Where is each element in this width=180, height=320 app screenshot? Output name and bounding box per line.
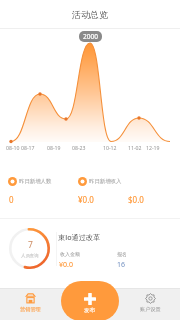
button[interactable]: 营销管理 <box>0 289 60 313</box>
staticText: 08-23 <box>72 144 86 151</box>
staticText: 账户设置 <box>140 306 161 313</box>
staticText: 昨日新增收入 <box>89 178 122 185</box>
button[interactable]: 发布 <box>61 281 119 320</box>
staticText: 活动总览 <box>72 9 108 20</box>
staticText: 昨日新增人数 <box>19 178 52 185</box>
staticText: 7 <box>28 239 33 251</box>
staticText: 08-17 <box>21 144 35 151</box>
staticText: 11-02 <box>128 144 142 151</box>
staticText: 2000 <box>83 32 98 41</box>
staticText: 发布 <box>84 307 95 314</box>
staticText: 束lo通过改革 <box>58 232 101 242</box>
staticText: 收入金额 <box>60 251 80 257</box>
staticText: $0.0 <box>128 194 144 205</box>
staticText: ¥0.0 <box>78 194 94 205</box>
staticText: ¥0.0 <box>59 260 73 270</box>
staticText: 10-12 <box>103 144 117 151</box>
staticText: 人员查询 <box>21 253 39 259</box>
staticText: 08-19 <box>47 144 61 151</box>
staticText: 0 <box>9 194 14 205</box>
staticText: 08-10 <box>6 144 20 151</box>
staticText: 16 <box>117 260 126 270</box>
staticText: 营销管理 <box>20 306 41 313</box>
button[interactable]: 账户设置 <box>120 289 180 313</box>
staticText: 报名 <box>117 251 127 257</box>
staticText: 12-19 <box>146 144 160 151</box>
